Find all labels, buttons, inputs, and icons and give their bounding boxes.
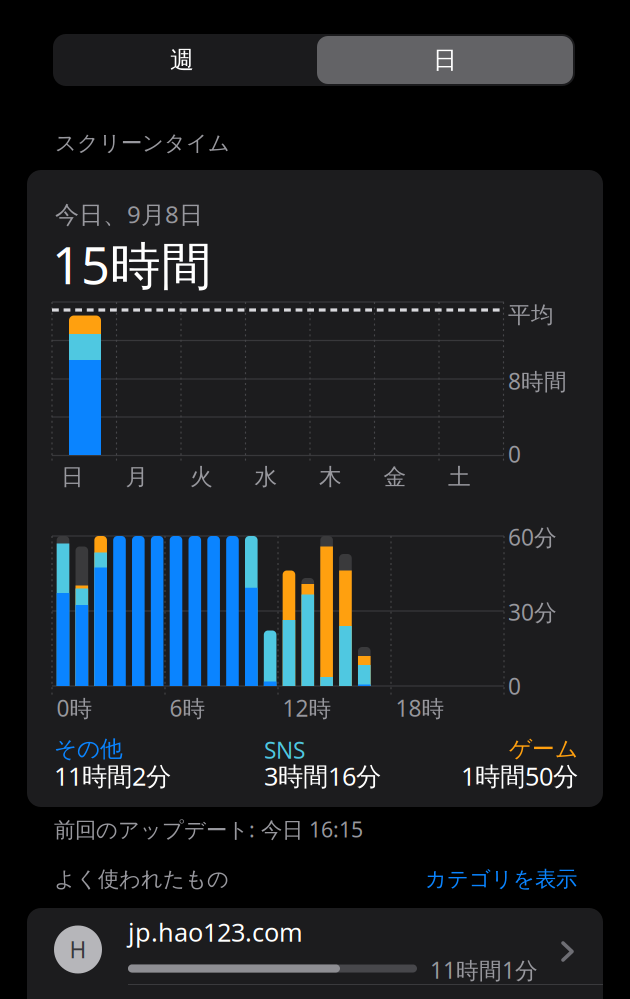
staticText: 11時間2分: [54, 759, 171, 793]
staticText: よく使われたもの: [54, 866, 229, 892]
staticText: 平均: [508, 301, 554, 329]
staticText: 6時: [169, 693, 205, 723]
staticText: カテゴリを表示: [425, 866, 577, 892]
staticText: jp.hao123.com: [128, 915, 303, 949]
staticText: その他: [54, 735, 123, 763]
staticText: スクリーンタイム: [55, 130, 230, 156]
staticText: H: [69, 934, 86, 964]
staticText: 月: [125, 463, 148, 491]
staticText: 8時間: [508, 366, 567, 396]
staticText: 週: [170, 45, 194, 75]
staticText: 0: [508, 439, 521, 469]
staticText: 水: [254, 463, 277, 491]
staticText: 12時: [282, 693, 331, 723]
staticText: 日: [61, 463, 84, 491]
staticText: 11時間1分: [430, 955, 538, 985]
staticText: 土: [448, 463, 471, 491]
staticText: ゲーム: [509, 735, 578, 763]
staticText: 18時: [395, 693, 444, 723]
staticText: 木: [319, 463, 342, 491]
staticText: 1時間50分: [461, 759, 578, 793]
button[interactable]: 週: [53, 34, 311, 86]
staticText: 日: [433, 45, 457, 75]
staticText: 火: [190, 463, 213, 491]
staticText: 0: [508, 671, 521, 701]
staticText: 15時間: [52, 231, 212, 298]
staticText: 30分: [508, 597, 557, 627]
staticText: 0時: [56, 693, 92, 723]
staticText: SNS: [264, 735, 305, 765]
staticText: 前回のアップデート: 今日 16:15: [54, 815, 363, 843]
staticText: 3時間16分: [264, 759, 381, 793]
staticText: 今日、9月8日: [55, 198, 203, 230]
staticText: 金: [383, 463, 406, 491]
button[interactable]: 日: [316, 34, 574, 86]
staticText: 60分: [508, 522, 557, 552]
button[interactable]: カテゴリを表示: [327, 866, 577, 892]
button[interactable]: H: [27, 908, 603, 985]
